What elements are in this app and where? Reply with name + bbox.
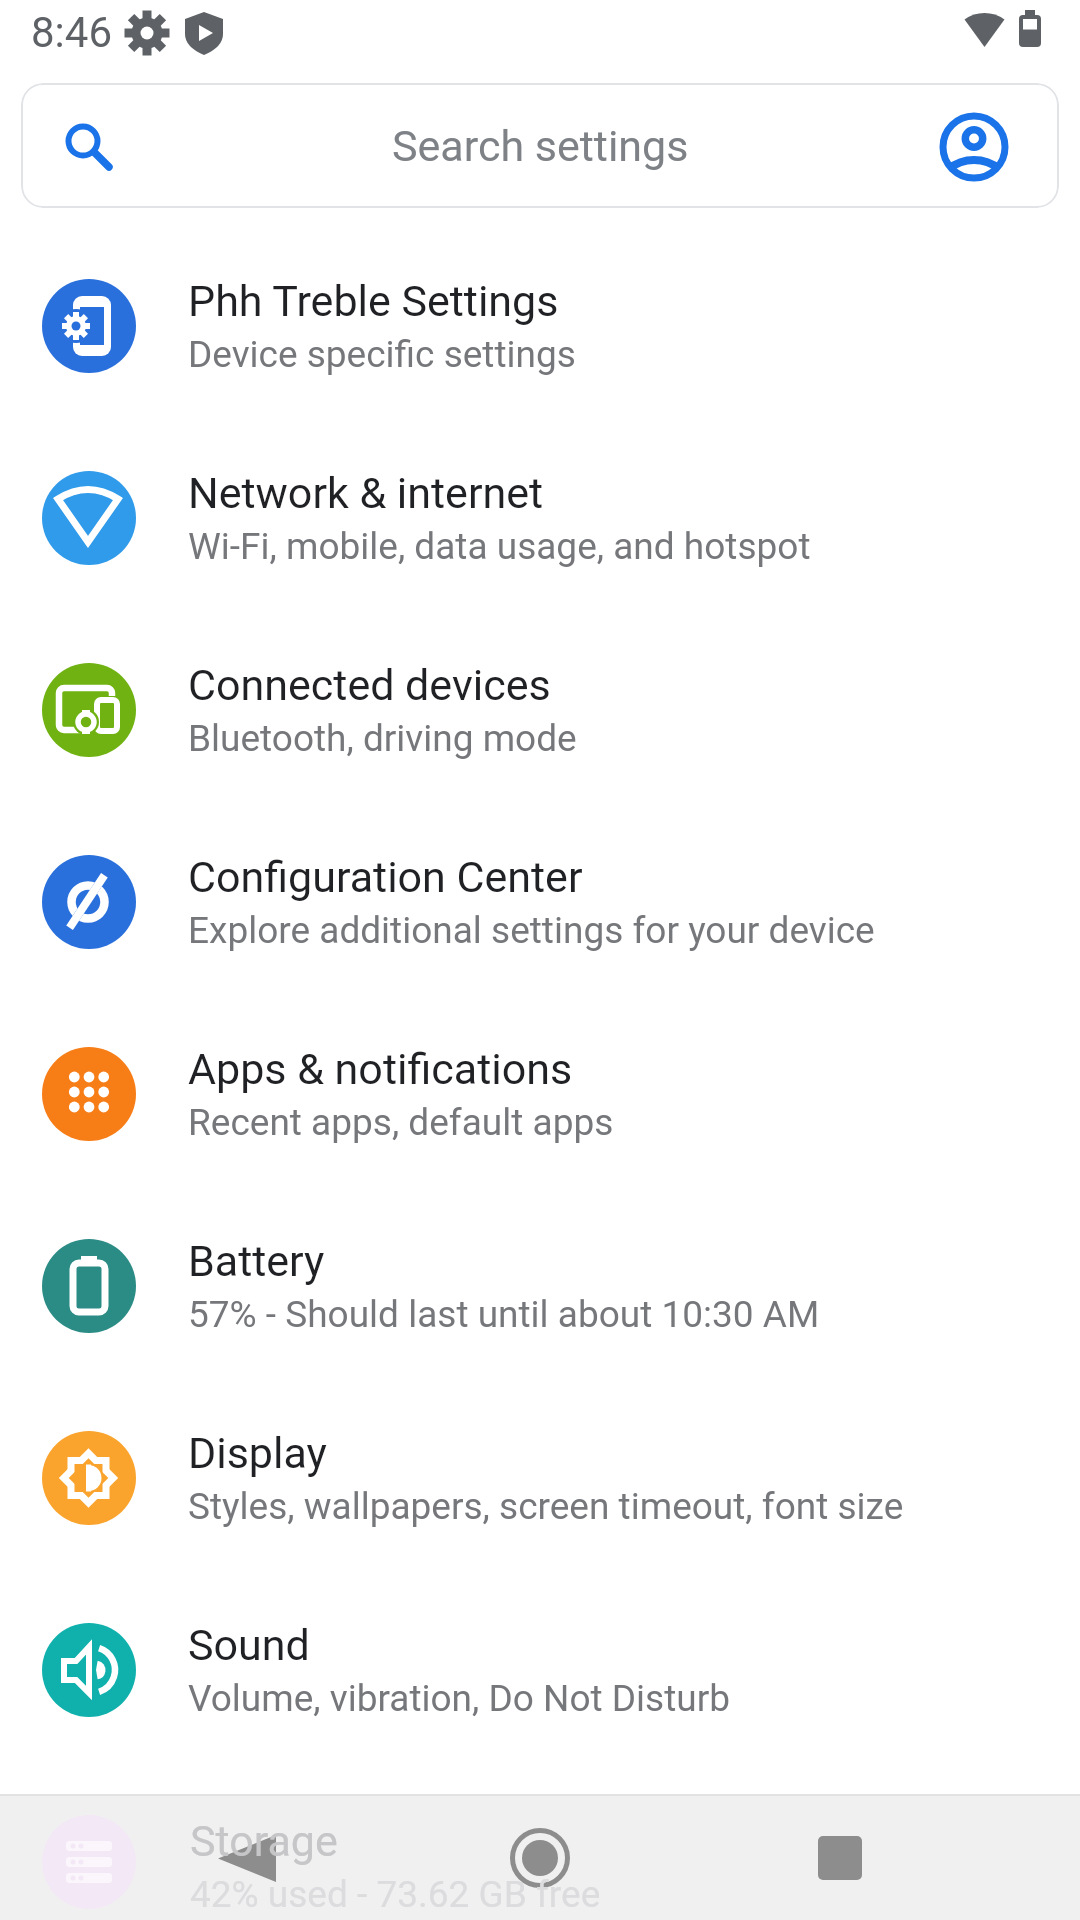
staticText: Storage (190, 1816, 338, 1866)
staticText: 42% used - 73.62 GB free (190, 1873, 601, 1916)
staticText: Display (188, 1428, 327, 1478)
staticText: Network & internet (188, 468, 544, 518)
staticText: 57% - Should last until about 10:30 AM (188, 1293, 820, 1336)
button[interactable]: Phh Treble Settings (0, 230, 1080, 422)
button[interactable]: Network & internet (0, 422, 1080, 614)
button[interactable] (0, 1794, 360, 1920)
staticText: Explore additional settings for your dev… (188, 909, 875, 952)
staticText: Wi-Fi, mobile, data usage, and hotspot (188, 525, 811, 568)
staticText: Apps & notifications (188, 1044, 573, 1094)
staticText: Search settings (392, 121, 689, 171)
staticText: Recent apps, default apps (188, 1101, 614, 1144)
staticText: Bluetooth, driving mode (188, 717, 577, 760)
button[interactable] (720, 1794, 1080, 1920)
button[interactable]: Apps & notifications (0, 998, 1080, 1190)
staticText: Configuration Center (188, 852, 583, 902)
button[interactable]: Battery (0, 1190, 1080, 1382)
staticText: Device specific settings (188, 333, 576, 376)
staticText: Styles, wallpapers, screen timeout, font… (188, 1485, 904, 1528)
staticText: Volume, vibration, Do Not Disturb (188, 1677, 731, 1720)
button[interactable]: Sound (0, 1574, 1080, 1766)
button[interactable]: Connected devices (0, 614, 1080, 806)
staticText: Phh Treble Settings (188, 276, 559, 326)
button[interactable] (360, 1794, 720, 1920)
staticText: 8:46 (31, 8, 112, 57)
button[interactable]: Search settings (21, 83, 1059, 208)
button[interactable]: Display (0, 1382, 1080, 1574)
staticText: Sound (188, 1620, 310, 1670)
staticText: Battery (188, 1236, 325, 1286)
staticText: Connected devices (188, 660, 551, 710)
button[interactable]: Configuration Center (0, 806, 1080, 998)
